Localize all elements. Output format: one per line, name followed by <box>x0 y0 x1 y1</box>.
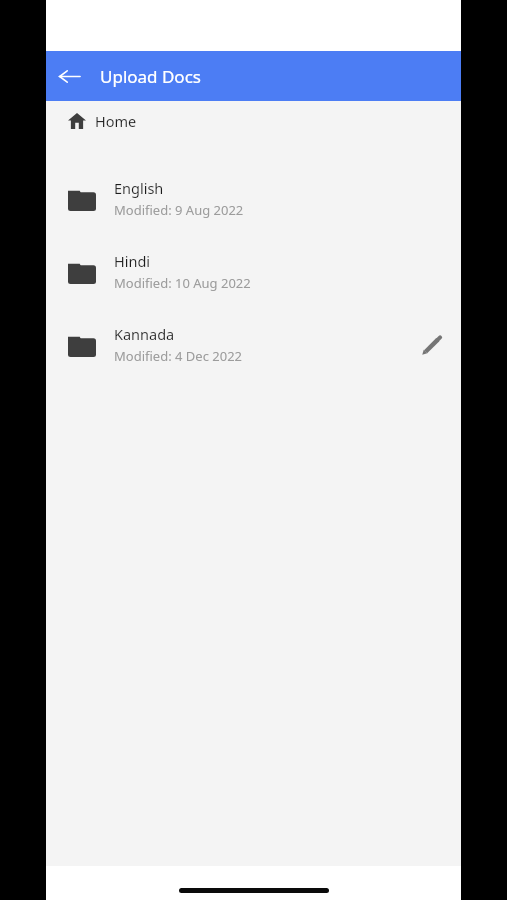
button[interactable]: Kannada <box>46 308 461 381</box>
button[interactable]: Home <box>46 101 461 140</box>
button[interactable]: Back <box>46 53 92 99</box>
staticText: Home <box>95 111 137 131</box>
staticText: Hindi <box>114 251 151 271</box>
staticText: Kannada <box>114 324 175 344</box>
staticText: Modified: 9 Aug 2022 <box>114 201 244 219</box>
staticText: Upload Docs <box>100 65 201 88</box>
staticText: English <box>114 178 164 198</box>
button[interactable]: Rename <box>409 323 453 367</box>
button[interactable]: Hindi <box>46 235 461 308</box>
staticText: Modified: 10 Aug 2022 <box>114 274 251 292</box>
button[interactable]: English <box>46 162 461 235</box>
staticText: Modified: 4 Dec 2022 <box>114 347 243 365</box>
